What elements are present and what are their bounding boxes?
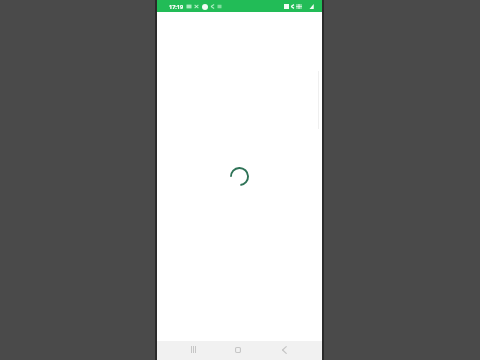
button[interactable]: Back — [271, 341, 297, 360]
button[interactable]: Home — [225, 341, 251, 360]
button[interactable]: Recent apps — [180, 341, 206, 360]
staticText: 17:19 — [169, 3, 184, 10]
